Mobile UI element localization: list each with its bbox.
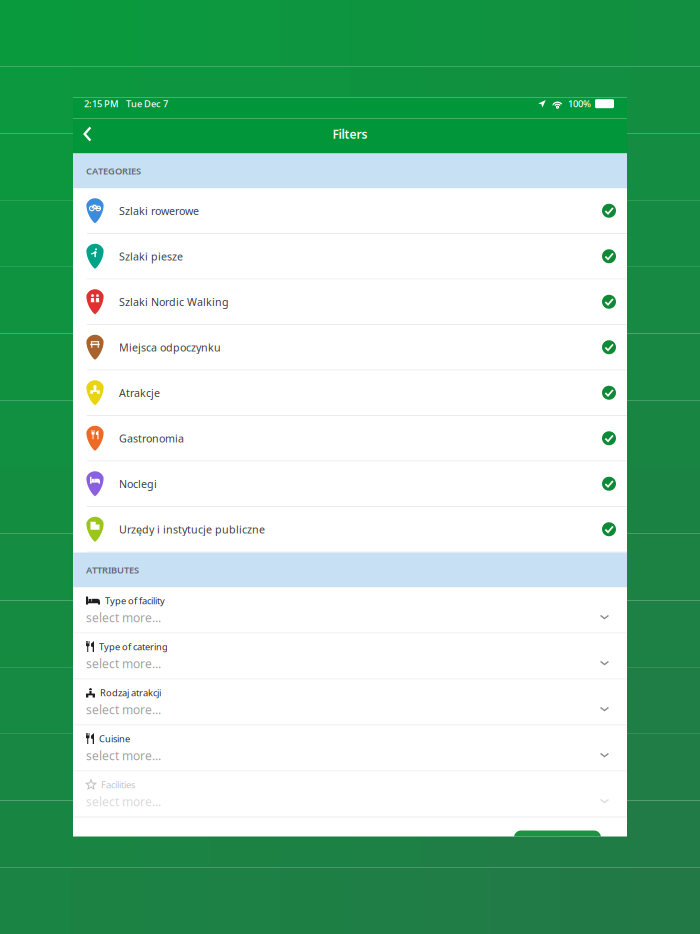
staticText: Szlaki Nordic Walking — [119, 295, 229, 309]
button[interactable]: Apply filters — [514, 830, 601, 836]
button[interactable]: Miejsca odpoczynku — [73, 325, 627, 370]
staticText: ATTRIBUTES — [86, 564, 139, 576]
button[interactable]: Cuisine — [73, 725, 627, 771]
button[interactable]: Gastronomia — [73, 416, 627, 461]
staticText: select more... — [86, 656, 161, 672]
staticText: 100% — [568, 97, 591, 110]
staticText: Facilities — [101, 778, 135, 791]
staticText: 2:15 PM — [84, 97, 119, 110]
staticText: Type of facility — [105, 594, 165, 607]
staticText: select more... — [86, 794, 161, 810]
staticText: select more... — [86, 748, 161, 764]
staticText: Szlaki piesze — [119, 249, 183, 263]
button[interactable]: Urzędy i instytucje publiczne — [73, 507, 627, 552]
button[interactable]: Atrakcje — [73, 370, 627, 416]
staticText: Gastronomia — [119, 431, 184, 445]
staticText: Urzędy i instytucje publiczne — [119, 522, 265, 536]
button[interactable]: Facilities — [73, 771, 627, 817]
button[interactable]: Szlaki Nordic Walking — [73, 279, 627, 325]
staticText: Atrakcje — [119, 386, 160, 400]
staticText: select more... — [86, 702, 161, 718]
staticText: Szlaki rowerowe — [119, 204, 199, 218]
button[interactable]: Szlaki piesze — [73, 234, 627, 279]
button[interactable]: Type of catering — [73, 633, 627, 679]
staticText: select more... — [86, 610, 161, 626]
staticText: Cuisine — [99, 732, 130, 745]
staticText: Miejsca odpoczynku — [119, 340, 221, 354]
staticText: Tue Dec 7 — [126, 97, 168, 110]
staticText: Type of catering — [99, 640, 168, 653]
button[interactable]: Szlaki rowerowe — [73, 188, 627, 234]
button[interactable]: Noclegi — [73, 461, 627, 507]
staticText: Rodzaj atrakcji — [100, 686, 161, 699]
staticText: Filters — [332, 126, 367, 142]
staticText: CATEGORIES — [86, 165, 141, 177]
button[interactable]: Back — [73, 120, 102, 151]
staticText: Noclegi — [119, 477, 157, 491]
button[interactable]: Rodzaj atrakcji — [73, 679, 627, 725]
button[interactable]: Type of facility — [73, 587, 627, 633]
